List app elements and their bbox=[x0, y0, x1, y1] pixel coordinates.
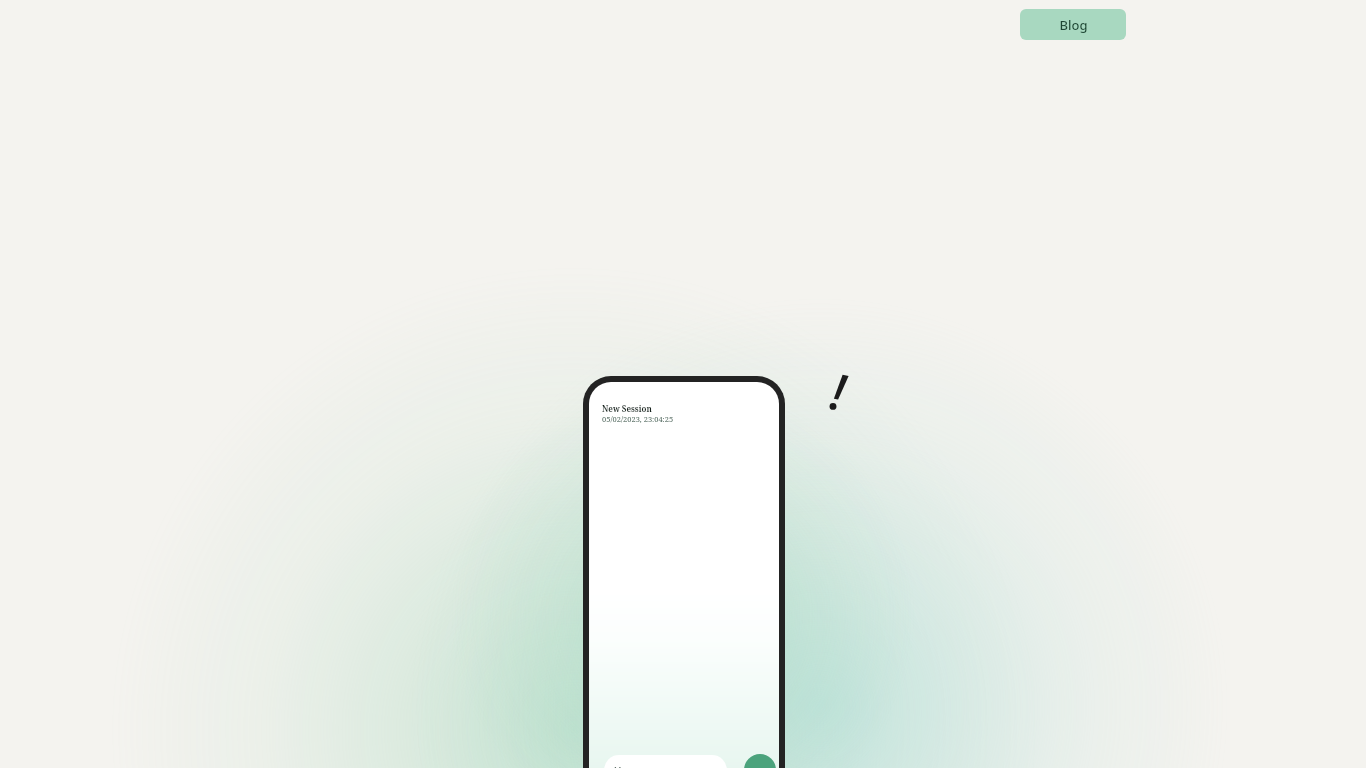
button[interactable]: Send message bbox=[744, 754, 776, 768]
staticText: Blog bbox=[1059, 16, 1088, 34]
staticText: Message bbox=[614, 765, 648, 768]
staticText: 05/02/2023, 23:04:25 bbox=[602, 414, 674, 424]
button[interactable]: Message bbox=[604, 755, 727, 768]
staticText: New Session bbox=[602, 403, 652, 414]
button[interactable]: Blog bbox=[1020, 9, 1126, 40]
